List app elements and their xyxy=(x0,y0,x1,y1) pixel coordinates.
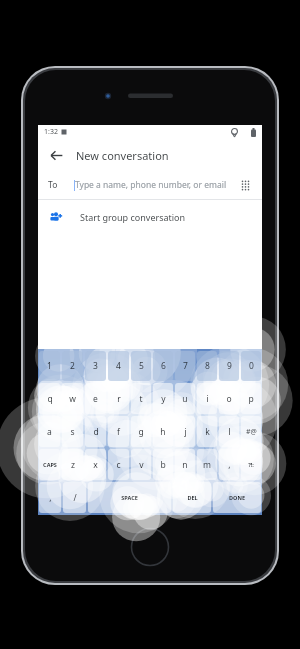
staticText: 5 xyxy=(139,360,144,372)
button[interactable]: b xyxy=(153,449,173,480)
staticText: h xyxy=(160,426,166,438)
staticText: , xyxy=(228,459,231,471)
staticText: , xyxy=(49,492,52,504)
staticText: v xyxy=(139,459,144,471)
button[interactable]: z xyxy=(62,449,83,480)
button[interactable]: x xyxy=(85,449,106,480)
staticText: 6 xyxy=(161,360,166,372)
staticText: DONE xyxy=(229,494,245,501)
button[interactable]: Back xyxy=(46,145,66,165)
staticText: c xyxy=(116,459,121,471)
staticText: 7 xyxy=(183,360,188,372)
button[interactable]: w xyxy=(62,383,83,414)
button[interactable]: 9 xyxy=(219,351,239,381)
staticText: j xyxy=(184,426,187,438)
staticText: x xyxy=(93,459,98,471)
staticText: 1 xyxy=(47,360,52,372)
button[interactable]: u xyxy=(175,383,195,414)
button[interactable]: l xyxy=(219,416,239,447)
button[interactable]: d xyxy=(85,416,106,447)
staticText: 1:32 xyxy=(44,127,58,137)
staticText: #@ xyxy=(246,427,257,437)
button[interactable]: DONE xyxy=(213,482,261,513)
staticText: 4 xyxy=(116,360,121,372)
button[interactable]: DEL xyxy=(173,482,211,513)
button[interactable]: h xyxy=(153,416,173,447)
button[interactable]: g xyxy=(131,416,151,447)
button[interactable]: j xyxy=(175,416,195,447)
button[interactable]: q xyxy=(39,383,60,414)
staticText: / xyxy=(73,492,77,504)
button[interactable]: i xyxy=(197,383,217,414)
button[interactable]: , xyxy=(219,449,239,480)
staticText: s xyxy=(70,426,75,438)
staticText: m xyxy=(203,459,211,471)
button[interactable]: e xyxy=(85,383,106,414)
staticText: i xyxy=(206,393,209,405)
button[interactable]: 4 xyxy=(108,351,129,381)
staticText: 0 xyxy=(249,360,254,372)
staticText: n xyxy=(182,459,188,471)
button[interactable]: Dialpad xyxy=(237,177,253,193)
staticText: w xyxy=(69,393,76,405)
button[interactable]: a xyxy=(39,416,60,447)
button[interactable]: 1 xyxy=(39,351,60,381)
button[interactable]: v xyxy=(131,449,151,480)
staticText: k xyxy=(205,426,210,438)
staticText: l xyxy=(228,426,231,438)
staticText: a xyxy=(47,426,52,438)
staticText: z xyxy=(71,459,75,471)
button[interactable]: #@ xyxy=(241,416,261,447)
button[interactable]: c xyxy=(108,449,129,480)
staticText: Start group conversation xyxy=(80,211,186,223)
button[interactable]: SPACE xyxy=(88,482,171,513)
button[interactable]: o xyxy=(219,383,239,414)
staticText: New conversation xyxy=(76,148,169,163)
button[interactable]: 3 xyxy=(85,351,106,381)
staticText: q xyxy=(47,393,53,405)
button[interactable]: t xyxy=(131,383,151,414)
button[interactable]: / xyxy=(63,482,86,513)
staticText: 8 xyxy=(205,360,210,372)
button[interactable]: p xyxy=(241,383,261,414)
staticText: y xyxy=(161,393,166,405)
staticText: SPACE xyxy=(121,494,138,501)
button[interactable]: 7 xyxy=(175,351,195,381)
button[interactable]: s xyxy=(62,416,83,447)
staticText: p xyxy=(248,393,254,405)
button[interactable]: f xyxy=(108,416,129,447)
button[interactable]: 6 xyxy=(153,351,173,381)
button[interactable]: k xyxy=(197,416,217,447)
button[interactable]: y xyxy=(153,383,173,414)
staticText: b xyxy=(160,459,166,471)
staticText: d xyxy=(93,426,99,438)
button[interactable]: CAPS xyxy=(39,449,60,480)
button[interactable]: n xyxy=(175,449,195,480)
staticText: g xyxy=(138,426,144,438)
button[interactable]: r xyxy=(108,383,129,414)
staticText: o xyxy=(226,393,232,405)
staticText: r xyxy=(117,393,121,405)
button[interactable]: 5 xyxy=(131,351,151,381)
staticText: CAPS xyxy=(43,461,57,468)
staticText: DEL xyxy=(187,494,198,501)
staticText: 2 xyxy=(70,360,75,372)
staticText: Type a name, phone number, or email xyxy=(75,179,227,191)
button[interactable]: m xyxy=(197,449,217,480)
button[interactable]: 8 xyxy=(197,351,217,381)
button[interactable]: 0 xyxy=(241,351,261,381)
button[interactable]: 2 xyxy=(62,351,83,381)
staticText: To xyxy=(48,179,58,191)
staticText: t xyxy=(139,393,143,405)
staticText: ?!: xyxy=(248,461,254,468)
staticText: e xyxy=(93,393,98,405)
button[interactable]: , xyxy=(39,482,61,513)
staticText: 9 xyxy=(227,360,232,372)
staticText: f xyxy=(117,426,120,438)
staticText: u xyxy=(182,393,188,405)
button[interactable]: ?!: xyxy=(241,449,261,480)
button[interactable]: Start group conversation xyxy=(38,200,262,234)
button[interactable]: To xyxy=(38,171,262,199)
staticText: 3 xyxy=(93,360,98,372)
button[interactable]: Back xyxy=(38,139,262,171)
